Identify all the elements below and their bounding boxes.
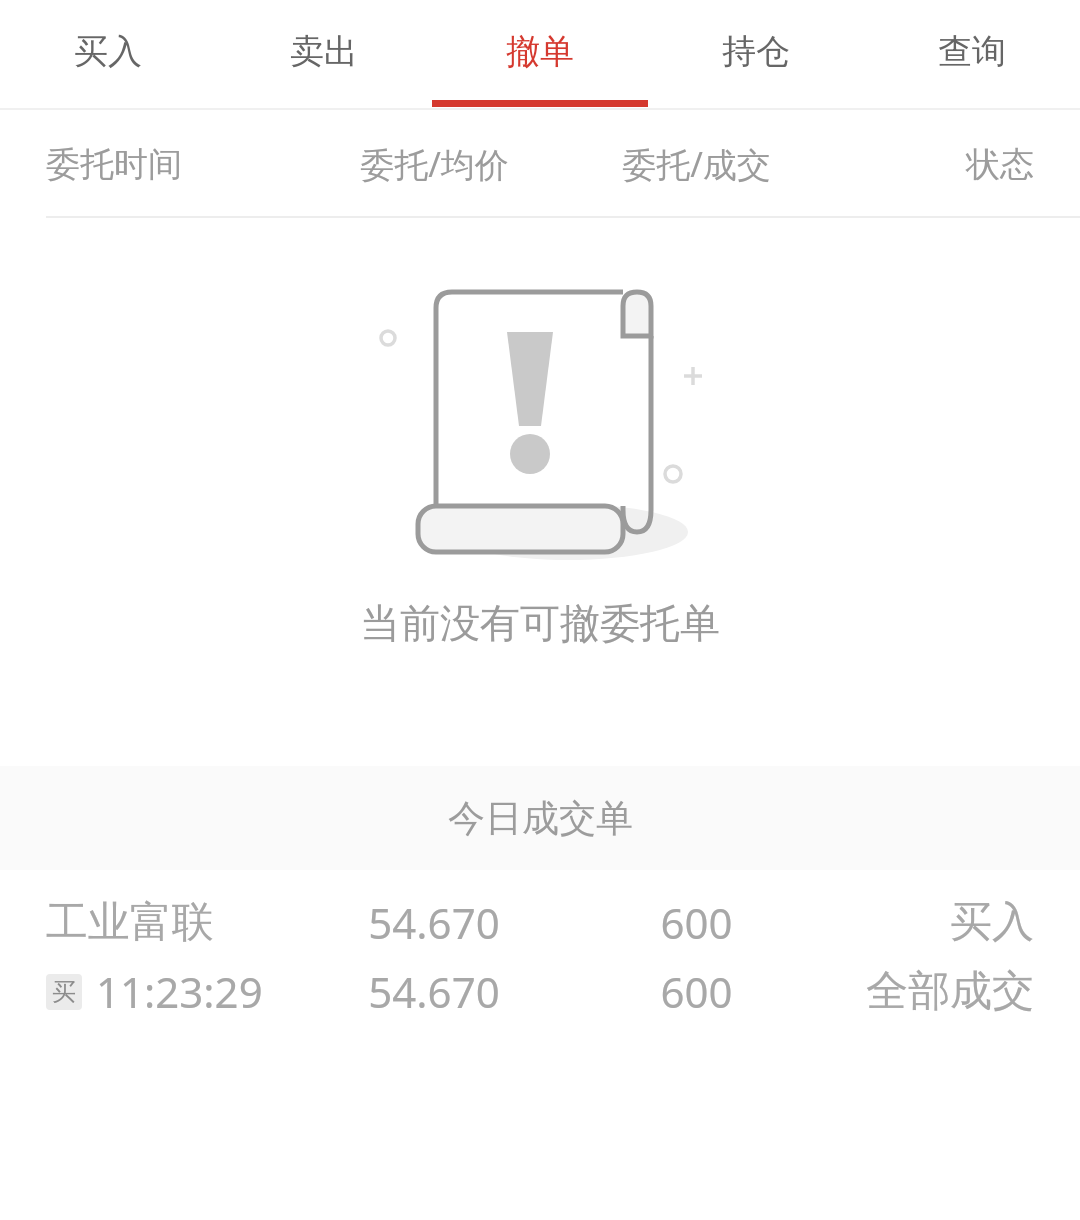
staticText: 持仓 bbox=[722, 30, 790, 73]
button[interactable]: 买入 bbox=[0, 0, 216, 110]
staticText: 11:23:29 bbox=[96, 963, 263, 1020]
button[interactable]: 撤单 bbox=[432, 0, 648, 110]
staticText: 54.670 bbox=[368, 894, 500, 951]
staticText: 查询 bbox=[938, 30, 1006, 73]
staticText: 买 bbox=[52, 977, 76, 1007]
staticText: 状态 bbox=[966, 143, 1034, 186]
staticText: 工业富联 bbox=[46, 896, 214, 949]
button[interactable]: 工业富联 bbox=[0, 870, 1080, 1044]
staticText: 600 bbox=[660, 963, 733, 1020]
staticText: 当前没有可撤委托单 bbox=[360, 598, 720, 648]
staticText: 今日成交单 bbox=[448, 795, 633, 842]
staticText: 买入 bbox=[950, 896, 1034, 949]
staticText: 撤单 bbox=[506, 30, 574, 73]
staticText: 委托/成交 bbox=[622, 141, 771, 187]
staticText: 买入 bbox=[74, 30, 142, 73]
staticText: 委托/均价 bbox=[360, 141, 509, 187]
staticText: 委托时间 bbox=[46, 143, 182, 186]
staticText: 54.670 bbox=[368, 963, 500, 1020]
staticText: 600 bbox=[660, 894, 733, 951]
button[interactable]: 查询 bbox=[864, 0, 1080, 110]
button[interactable]: 卖出 bbox=[216, 0, 432, 110]
staticText: 全部成交 bbox=[866, 965, 1034, 1018]
staticText: 卖出 bbox=[290, 30, 358, 73]
button[interactable]: 持仓 bbox=[648, 0, 864, 110]
